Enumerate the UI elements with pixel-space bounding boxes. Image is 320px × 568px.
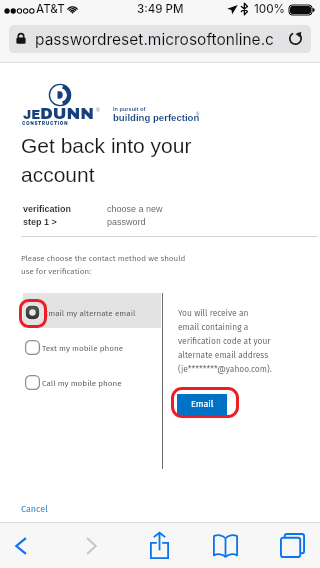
staticText: 3:49 PM [137, 2, 184, 16]
staticText: verification step 1 > [23, 204, 72, 227]
staticText: ® [196, 112, 200, 117]
staticText: Get back into your account [21, 134, 192, 187]
staticText: Email my alternate email [44, 308, 136, 318]
button[interactable] [21, 301, 161, 324]
button[interactable] [21, 371, 161, 394]
staticText: AT&T [36, 2, 65, 16]
button[interactable]: Email [177, 394, 227, 415]
staticText: passwordreset.microsoftonline.c [35, 30, 274, 49]
staticText: Call my mobile phone [42, 378, 122, 388]
button[interactable]: Bookmarks [192, 523, 256, 568]
staticText: CONSTRUCTION [22, 121, 69, 126]
staticText: ® [96, 107, 100, 113]
staticText: choose a new password [107, 204, 163, 227]
button[interactable]: Cancel [21, 504, 48, 515]
staticText: Text my mobile phone [42, 343, 124, 353]
staticText: DUNN [40, 105, 95, 123]
staticText: Cancel [21, 504, 48, 515]
button[interactable] [9, 25, 311, 53]
button[interactable]: Forward [64, 523, 128, 568]
button[interactable]: Reload [285, 28, 305, 48]
staticText: Please choose the contact method we shou… [21, 254, 186, 277]
button[interactable]: Tabs [256, 523, 320, 568]
button[interactable]: Back [0, 523, 64, 568]
staticText: building perfection [113, 112, 200, 123]
staticText: You will receive an email containing a v… [178, 308, 272, 374]
staticText: Email [191, 399, 214, 410]
staticText: JE [23, 108, 41, 122]
staticText: In pursuit of [113, 106, 146, 112]
staticText: 100% [254, 2, 286, 16]
button[interactable]: Share [128, 523, 192, 568]
button[interactable] [21, 336, 161, 359]
